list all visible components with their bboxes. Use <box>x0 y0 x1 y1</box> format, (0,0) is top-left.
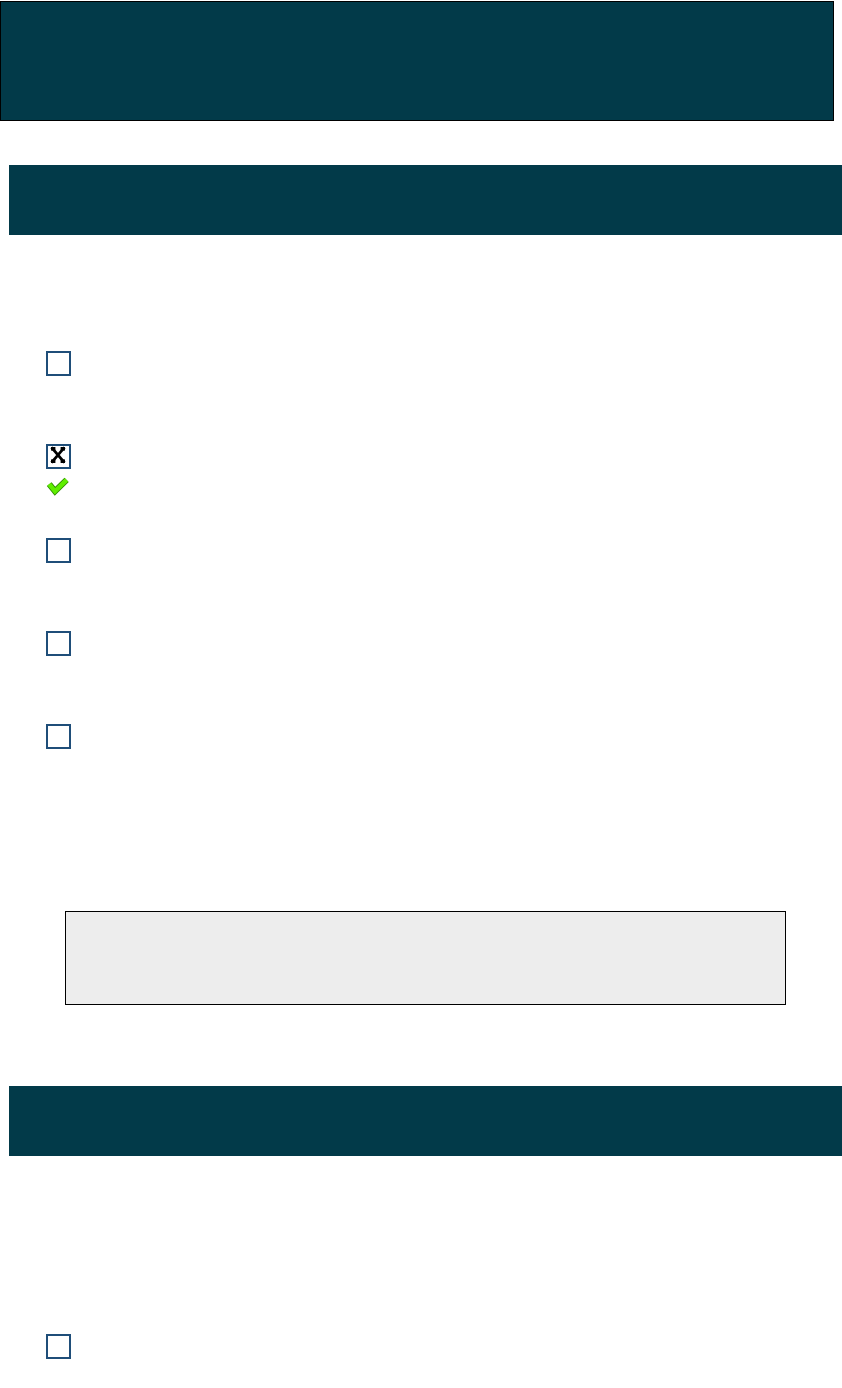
button[interactable]: Option checkbox <box>0 1334 842 1359</box>
button[interactable]: Option checkbox <box>0 538 842 563</box>
button[interactable]: Correct answer <box>0 476 842 494</box>
button[interactable]: Image failed to load <box>0 444 842 469</box>
button[interactable]: Option checkbox <box>0 351 842 376</box>
button[interactable]: Option checkbox <box>0 724 842 749</box>
button[interactable]: Option checkbox <box>0 631 842 656</box>
